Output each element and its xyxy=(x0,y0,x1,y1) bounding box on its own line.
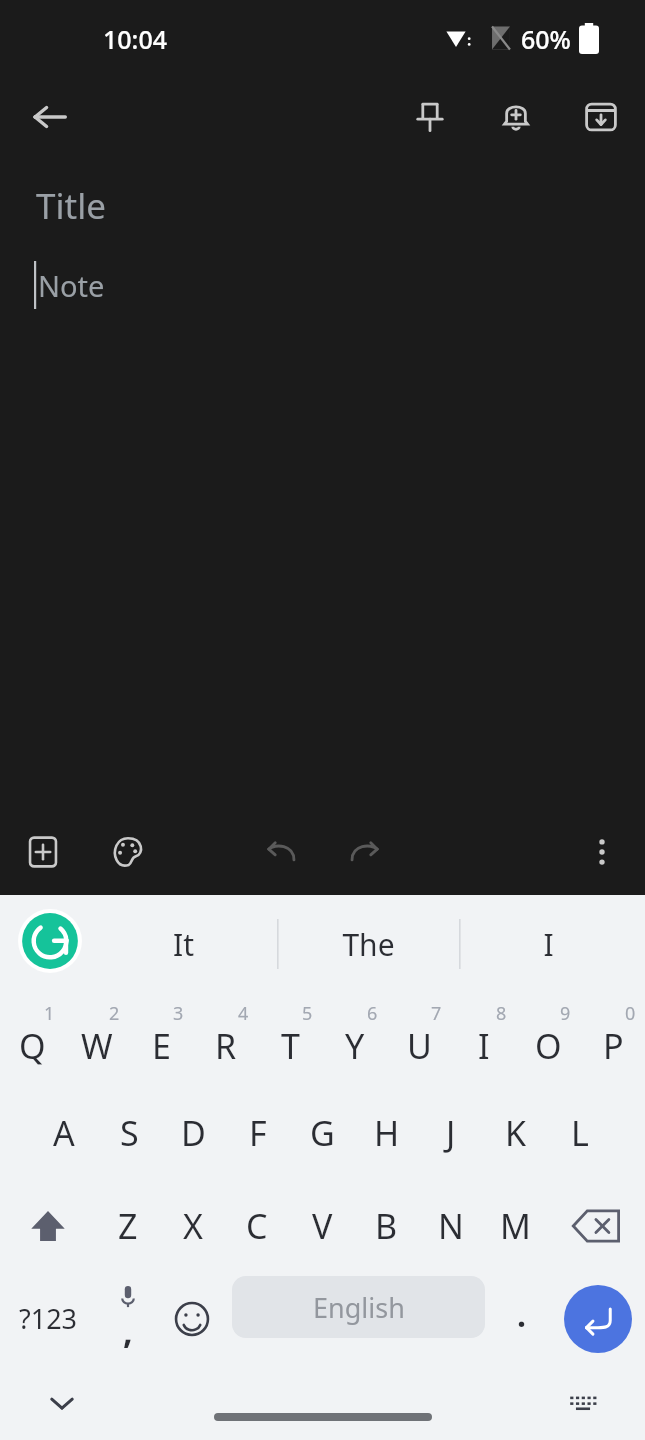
staticText: 60% xyxy=(521,22,571,56)
staticText: J xyxy=(446,1110,456,1156)
button[interactable]: 1 xyxy=(0,993,64,1086)
staticText: D xyxy=(181,1110,206,1156)
button[interactable]: Change color xyxy=(94,818,162,886)
staticText: 0 xyxy=(625,1001,636,1026)
button[interactable]: H xyxy=(355,1086,419,1179)
staticText: 6 xyxy=(367,1001,378,1026)
staticText: English xyxy=(313,1289,405,1326)
staticText: Z xyxy=(118,1203,138,1249)
staticText: R xyxy=(215,1023,237,1069)
button[interactable]: L xyxy=(548,1086,612,1179)
button[interactable]: D xyxy=(161,1086,225,1179)
button[interactable]: N xyxy=(419,1179,483,1272)
staticText: 5 xyxy=(302,1001,313,1026)
button[interactable]: 5 xyxy=(258,993,322,1086)
button[interactable]: 8 xyxy=(452,993,516,1086)
staticText: 4 xyxy=(238,1001,249,1026)
staticText: E xyxy=(152,1023,171,1069)
button[interactable]: More options xyxy=(568,818,636,886)
staticText: 10:04 xyxy=(103,22,168,56)
button[interactable]: F xyxy=(226,1086,290,1179)
staticText: A xyxy=(53,1110,75,1156)
staticText: Note xyxy=(38,266,105,305)
staticText: F xyxy=(249,1110,267,1156)
staticText: H xyxy=(374,1110,400,1156)
staticText: S xyxy=(120,1110,139,1156)
staticText: G xyxy=(310,1110,335,1156)
staticText: N xyxy=(438,1203,464,1249)
staticText: T xyxy=(281,1023,300,1069)
staticText: Q xyxy=(19,1023,46,1069)
button[interactable]: 9 xyxy=(516,993,580,1086)
staticText: I xyxy=(478,1023,490,1069)
staticText: It xyxy=(173,924,194,965)
button[interactable]: Hide keyboard xyxy=(28,1369,96,1437)
staticText: U xyxy=(407,1023,432,1069)
button[interactable]: Shift xyxy=(0,1179,96,1272)
button[interactable]: Emoji xyxy=(160,1272,224,1365)
button[interactable]: Z xyxy=(96,1179,160,1272)
button[interactable]: . xyxy=(492,1272,550,1365)
button[interactable]: V xyxy=(290,1179,354,1272)
button[interactable]: Title xyxy=(0,162,645,250)
staticText: V xyxy=(312,1203,333,1249)
staticText: 9 xyxy=(560,1001,571,1026)
staticText: C xyxy=(246,1203,268,1249)
button[interactable]: The xyxy=(280,895,456,993)
button[interactable]: G xyxy=(290,1086,354,1179)
button[interactable]: Back xyxy=(16,83,84,151)
button[interactable]: Change keyboard xyxy=(549,1369,617,1437)
staticText: I xyxy=(543,924,554,965)
button[interactable]: Archive xyxy=(567,83,635,151)
button[interactable]: 3 xyxy=(129,993,193,1086)
button[interactable]: S xyxy=(97,1086,161,1179)
button[interactable]: Grammarly xyxy=(14,905,86,977)
staticText: Title xyxy=(36,182,106,230)
staticText: 2 xyxy=(109,1001,120,1026)
button[interactable]: English xyxy=(232,1276,485,1338)
button[interactable]: 7 xyxy=(387,993,451,1086)
button[interactable]: A xyxy=(32,1086,96,1179)
staticText: 8 xyxy=(496,1001,507,1026)
button[interactable]: Redo xyxy=(331,818,399,886)
button[interactable]: X xyxy=(161,1179,225,1272)
button[interactable]: It xyxy=(108,895,258,993)
staticText: Y xyxy=(345,1023,365,1069)
button[interactable]: Add reminder xyxy=(482,83,550,151)
button[interactable]: Comma, voice input xyxy=(96,1272,160,1365)
staticText: O xyxy=(535,1023,562,1069)
button[interactable]: J xyxy=(419,1086,483,1179)
staticText: K xyxy=(505,1110,527,1156)
staticText: , xyxy=(123,1308,133,1354)
staticText: 1 xyxy=(44,1001,55,1026)
staticText: ?123 xyxy=(19,1300,78,1337)
button[interactable]: 2 xyxy=(65,993,129,1086)
button[interactable]: Backspace xyxy=(549,1179,645,1272)
staticText: 7 xyxy=(431,1001,442,1026)
button[interactable]: Undo xyxy=(247,818,315,886)
button[interactable]: B xyxy=(354,1179,418,1272)
button[interactable]: M xyxy=(483,1179,547,1272)
staticText: . xyxy=(517,1293,526,1337)
button[interactable]: I xyxy=(468,895,628,993)
staticText: B xyxy=(375,1203,398,1249)
button[interactable]: C xyxy=(225,1179,289,1272)
staticText: X xyxy=(183,1203,203,1249)
staticText: The xyxy=(342,924,395,965)
button[interactable]: ?123 xyxy=(0,1272,96,1365)
staticText: P xyxy=(603,1023,624,1069)
button[interactable]: 0 xyxy=(581,993,645,1086)
staticText: 3 xyxy=(173,1001,184,1026)
button[interactable]: K xyxy=(484,1086,548,1179)
button[interactable]: Note xyxy=(0,250,645,320)
staticText: L xyxy=(571,1110,589,1156)
button[interactable]: Pin note xyxy=(396,83,464,151)
button[interactable]: Add xyxy=(9,818,77,886)
staticText: M xyxy=(500,1203,531,1249)
button[interactable]: 6 xyxy=(323,993,387,1086)
staticText: W xyxy=(81,1023,113,1069)
button[interactable]: Enter xyxy=(551,1272,645,1365)
button[interactable]: 4 xyxy=(194,993,258,1086)
